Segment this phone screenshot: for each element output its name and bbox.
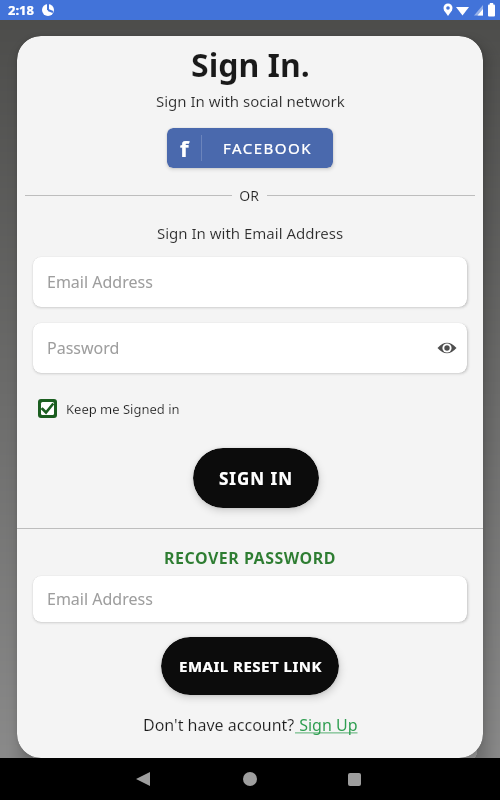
button[interactable]: SIGN IN xyxy=(193,448,319,508)
staticText: f xyxy=(180,133,189,163)
staticText: Keep me Signed in xyxy=(66,400,180,418)
button[interactable]: EMAIL RESET LINK xyxy=(161,637,339,695)
staticText: EMAIL RESET LINK xyxy=(179,656,322,676)
button[interactable] xyxy=(136,772,150,786)
button[interactable] xyxy=(348,773,361,786)
button[interactable]: Email Address xyxy=(33,257,467,307)
staticText: Sign In. xyxy=(191,43,310,87)
staticText: Email Address xyxy=(47,271,153,293)
staticText: RECOVER PASSWORD xyxy=(164,547,336,569)
staticText: FACEBOOK xyxy=(223,138,313,158)
button[interactable]: f xyxy=(167,128,333,168)
staticText: Sign In with social network xyxy=(156,91,345,111)
button[interactable]: Sign Up xyxy=(295,714,358,736)
button[interactable]: Password xyxy=(33,323,467,373)
staticText: Password xyxy=(47,337,120,359)
button[interactable]: Email Address xyxy=(33,576,467,622)
staticText: Sign In with Email Address xyxy=(157,223,344,243)
staticText: OR xyxy=(232,186,267,205)
button[interactable]: Keep me Signed in xyxy=(38,399,180,418)
button[interactable] xyxy=(243,772,257,786)
staticText: Don't have account? xyxy=(143,714,295,736)
staticText: 2:18 xyxy=(8,1,34,19)
staticText: SIGN IN xyxy=(219,467,293,490)
staticText: Email Address xyxy=(47,588,153,610)
